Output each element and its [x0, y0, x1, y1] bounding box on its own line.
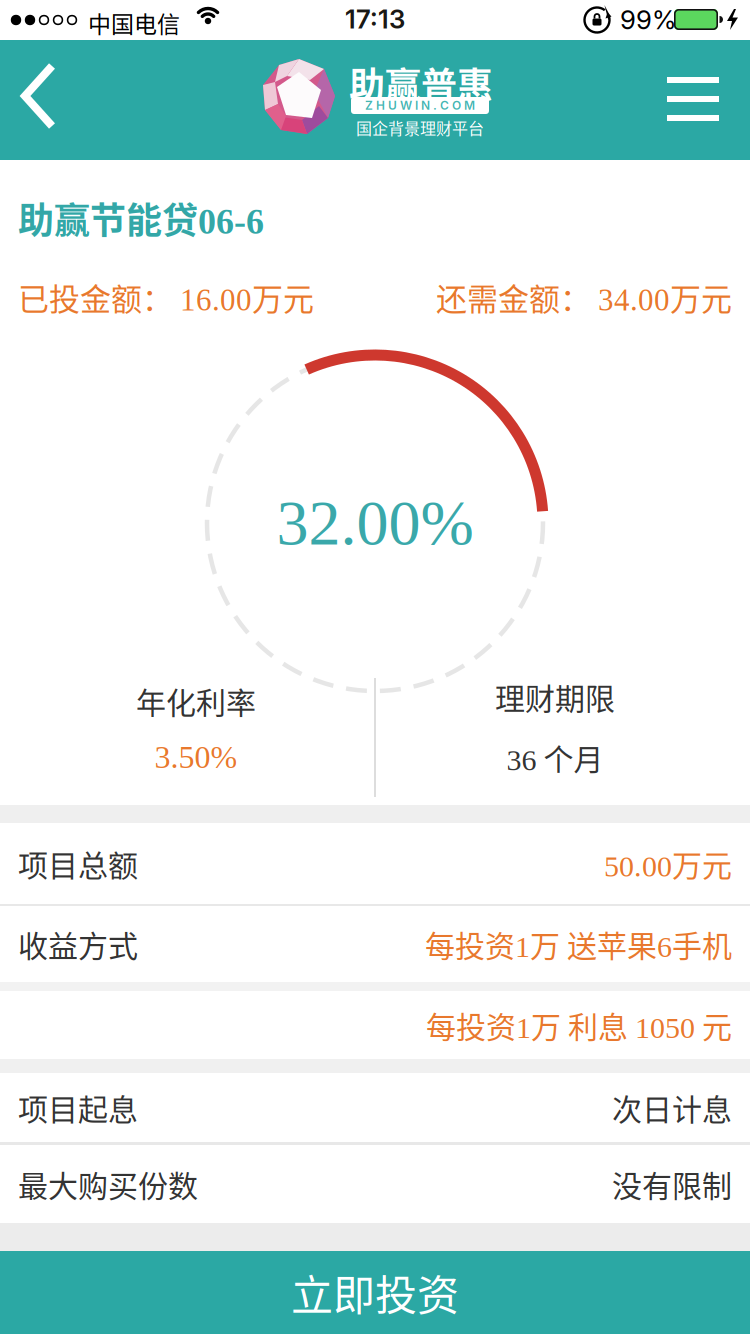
- staticText: 17:13: [345, 3, 405, 35]
- staticText: 06-6: [198, 202, 264, 241]
- staticText: 万 利息: [531, 1003, 635, 1047]
- staticText: 99%: [620, 4, 676, 35]
- staticText: Z H U W I N . C O M: [365, 98, 475, 113]
- staticText: 万 送苹果: [530, 922, 657, 966]
- staticText: 6: [657, 930, 672, 963]
- staticText: 中国电信: [88, 6, 180, 39]
- staticText: 16.00: [180, 283, 252, 317]
- staticText: 1: [515, 930, 530, 963]
- staticText: 已投金额：: [18, 275, 180, 319]
- staticText: 还需金额：: [436, 275, 598, 319]
- staticText: 没有限制: [612, 1162, 732, 1206]
- staticText: 万元: [670, 275, 732, 319]
- button[interactable]: Back: [0, 40, 90, 160]
- staticText: 元: [695, 1003, 732, 1047]
- staticText: 助赢节能贷: [18, 192, 198, 244]
- button[interactable]: 立即投资: [0, 1251, 750, 1334]
- staticText: 年化利率: [136, 679, 256, 722]
- staticText: 1: [516, 1011, 531, 1044]
- staticText: 万元: [672, 842, 732, 885]
- staticText: 最大购买份数: [18, 1162, 198, 1206]
- staticText: 手机: [672, 922, 732, 966]
- staticText: 次日计息: [612, 1086, 732, 1129]
- staticText: 收益方式: [18, 922, 138, 966]
- staticText: 理财期限: [495, 675, 615, 718]
- staticText: 国企背景理财平台: [356, 116, 484, 139]
- staticText: 3.50%: [154, 739, 237, 775]
- staticText: 万元: [252, 275, 314, 319]
- staticText: 32.00%: [276, 488, 473, 558]
- staticText: 项目总额: [18, 842, 138, 885]
- staticText: 立即投资: [291, 1262, 459, 1323]
- staticText: 个月: [536, 735, 603, 779]
- staticText: 36: [506, 744, 536, 777]
- staticText: 每投资: [425, 922, 515, 966]
- staticText: 1050: [635, 1011, 695, 1044]
- button[interactable]: Menu: [0, 40, 750, 160]
- staticText: 50.00: [604, 850, 672, 883]
- staticText: 每投资: [426, 1003, 516, 1047]
- staticText: 34.00: [598, 283, 670, 317]
- staticText: 助赢普惠: [349, 57, 493, 109]
- staticText: 项目起息: [18, 1086, 138, 1129]
